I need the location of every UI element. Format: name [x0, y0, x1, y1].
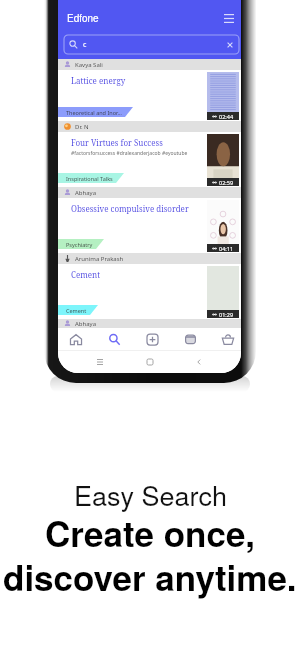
staticText: discover anytime.: [3, 552, 297, 602]
button[interactable]: Home: [143, 355, 157, 369]
staticText: Obsessive compulsive disorder: [71, 203, 189, 214]
button[interactable]: Library: [177, 328, 203, 350]
staticText: Theoretical and Inor…: [66, 109, 122, 116]
staticText: Edfone: [67, 11, 99, 25]
staticText: Easy Search: [74, 475, 227, 514]
button[interactable]: Obsessive compulsive disorder: [58, 198, 241, 253]
staticText: c: [83, 40, 87, 50]
staticText: 02:59: [219, 179, 234, 186]
button[interactable]: Add: [139, 328, 165, 350]
staticText: #factorsforsuccess #dralexanderjacob #ey…: [71, 150, 188, 157]
staticText: 01:29: [219, 311, 234, 318]
button[interactable]: Back: [192, 355, 206, 369]
button[interactable]: c: [64, 35, 239, 54]
staticText: Abhaya: [75, 320, 97, 328]
button[interactable]: Cement: [58, 264, 241, 319]
staticText: Dr. N: [75, 123, 89, 131]
staticText: Psychiatry: [66, 241, 93, 248]
staticText: Cement: [66, 307, 87, 314]
staticText: 02:44: [219, 113, 234, 120]
button[interactable]: Bag: [215, 328, 241, 350]
button[interactable]: Home: [63, 328, 89, 350]
staticText: Four Virtues for Success: [71, 137, 163, 148]
button[interactable]: Recents: [93, 355, 107, 369]
staticText: Abhaya: [75, 189, 97, 197]
staticText: Kavya Sali: [75, 61, 103, 69]
button[interactable]: Search: [101, 328, 127, 350]
staticText: Inspirational Talks: [66, 175, 113, 182]
button[interactable]: Four Virtues for Success: [58, 132, 241, 187]
button[interactable]: Lattice energy: [58, 70, 241, 121]
staticText: Create once,: [45, 508, 256, 558]
staticText: Cement: [71, 269, 101, 280]
button[interactable]: Menu: [221, 10, 237, 26]
staticText: 04:11: [219, 245, 234, 252]
staticText: Arunima Prakash: [75, 255, 124, 263]
staticText: Lattice energy: [71, 75, 126, 86]
